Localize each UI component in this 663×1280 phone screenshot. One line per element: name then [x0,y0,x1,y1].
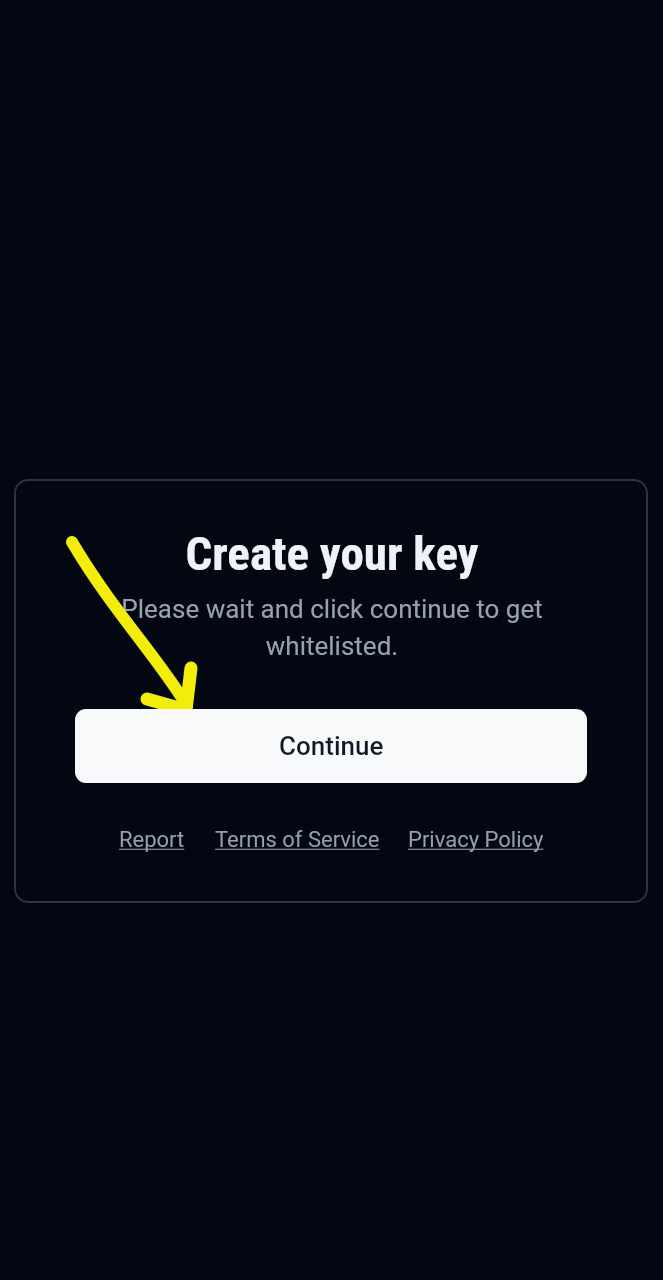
staticText: Create your key [185,526,479,581]
staticText: Continue [279,731,384,761]
staticText: Please wait and click continue to get wh… [117,594,547,661]
staticText: Report [119,827,185,853]
staticText: Terms of Service [215,827,380,853]
button[interactable]: Terms of Service [215,826,380,854]
staticText: Privacy Policy [408,827,544,853]
button[interactable]: Report [119,826,185,854]
button[interactable]: Privacy Policy [408,826,544,854]
button[interactable]: Continue [75,709,587,783]
